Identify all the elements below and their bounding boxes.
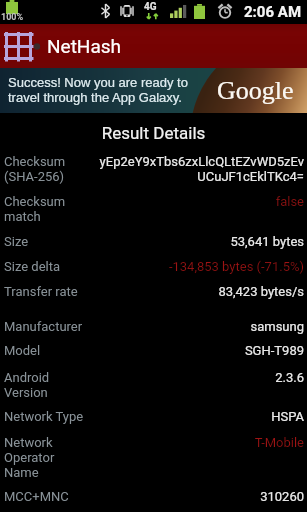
button[interactable]: Network Type — [0, 409, 307, 424]
button[interactable]: Checksum (SHA-256) — [0, 154, 307, 184]
staticText: -134,853 bytes (-71.5%) — [97, 259, 304, 274]
button[interactable]: Success! Now you are ready to — [0, 68, 307, 113]
staticText: Size — [4, 234, 97, 249]
staticText: HSPA — [97, 409, 304, 424]
staticText: Checksum (SHA-256) — [4, 154, 97, 184]
staticText: Android Version — [4, 370, 97, 400]
staticText: Google — [217, 76, 294, 105]
staticText: 2:06 AM — [244, 3, 302, 21]
staticText: SGH-T989 — [97, 343, 304, 358]
staticText: travel through the App Galaxy. — [8, 90, 182, 105]
button[interactable]: Checksum match — [0, 194, 307, 224]
button[interactable]: Size delta — [0, 259, 307, 274]
staticText: 2.3.6 — [97, 370, 304, 385]
staticText: Result Details — [0, 123, 307, 143]
button[interactable]: MCC+MNC — [0, 489, 307, 504]
staticText: Model — [4, 343, 97, 358]
staticText: 310260 — [97, 489, 304, 504]
staticText: Transfer rate — [4, 284, 97, 299]
staticText: 4G — [144, 1, 157, 13]
staticText: false — [97, 194, 304, 209]
staticText: Network Operator Name — [4, 435, 97, 480]
button[interactable]: Size — [0, 234, 307, 249]
staticText: Size delta — [4, 259, 97, 274]
staticText: yEp2eY9xTbs6zxLlcQLtEZvWD5zEv UCuJF1cEkl… — [97, 154, 304, 184]
staticText: 83,423 bytes/s — [97, 284, 304, 299]
button[interactable]: NetHash — [0, 24, 307, 68]
staticText: 100% — [1, 12, 24, 23]
button[interactable]: Transfer rate — [0, 284, 307, 299]
button[interactable]: Android Version — [0, 370, 307, 400]
staticText: Checksum match — [4, 194, 97, 224]
staticText: Manufacturer — [4, 319, 97, 334]
staticText: MCC+MNC — [4, 489, 97, 504]
staticText: NetHash — [47, 35, 122, 57]
button[interactable]: Model — [0, 343, 307, 358]
staticText: samsung — [97, 319, 304, 334]
button[interactable]: Manufacturer — [0, 319, 307, 334]
staticText: Network Type — [4, 409, 97, 424]
staticText: Success! Now you are ready to — [8, 75, 188, 90]
staticText: 53,641 bytes — [97, 234, 304, 249]
staticText: T-Mobile — [97, 435, 304, 450]
button[interactable]: Network Operator Name — [0, 435, 307, 480]
